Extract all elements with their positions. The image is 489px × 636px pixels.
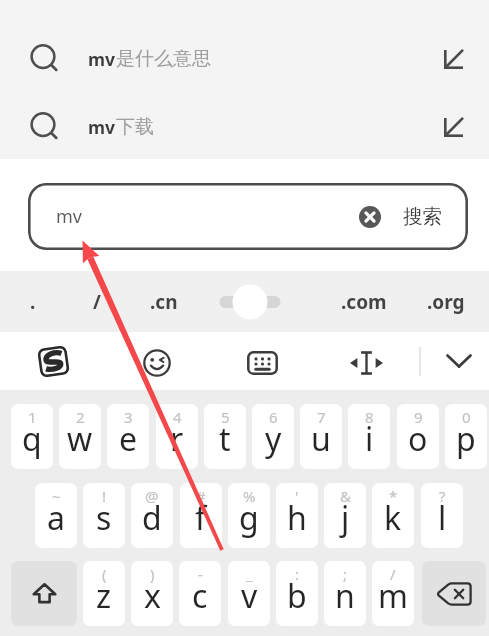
button[interactable]: & <box>324 483 366 548</box>
staticText: c <box>192 574 208 618</box>
staticText: ' <box>295 486 299 506</box>
staticText: mv <box>88 115 116 139</box>
staticText: 搜索 <box>403 204 442 229</box>
staticText: 1 <box>28 407 37 427</box>
button[interactable]: 8 <box>348 404 390 469</box>
staticText: & <box>340 486 351 506</box>
button[interactable]: Shift <box>11 561 77 626</box>
staticText: - <box>198 564 203 584</box>
button[interactable]: Hide keyboard <box>432 332 486 390</box>
staticText: s <box>96 496 112 540</box>
button[interactable]: 7 <box>300 404 342 469</box>
button[interactable]: 6 <box>252 404 294 469</box>
staticText: a <box>47 496 65 540</box>
button[interactable]: 0 <box>445 404 487 469</box>
staticText: w <box>67 417 93 461</box>
button[interactable]: Insert suggestion <box>437 93 471 159</box>
button[interactable]: 9 <box>397 404 439 469</box>
staticText: .cn <box>150 289 178 315</box>
staticText: mv <box>56 204 82 229</box>
staticText: .org <box>427 289 465 315</box>
staticText: k <box>384 496 402 540</box>
button[interactable]: ( <box>83 561 125 626</box>
button[interactable]: ? <box>421 483 463 548</box>
button[interactable]: . <box>0 271 66 332</box>
button[interactable]: Sogou input <box>26 332 80 390</box>
staticText: b <box>287 574 307 618</box>
staticText: l <box>438 496 447 540</box>
button[interactable]: ! <box>83 483 125 548</box>
button[interactable]: # <box>180 483 222 548</box>
staticText: 8 <box>365 407 374 427</box>
staticText: 7 <box>317 407 326 427</box>
button[interactable]: Clear text <box>352 183 388 250</box>
button[interactable]: ' <box>276 483 318 548</box>
staticText: ) <box>150 564 155 584</box>
button[interactable]: : <box>276 561 318 626</box>
staticText: # <box>196 486 206 506</box>
staticText: g <box>239 496 259 540</box>
button[interactable]: 5 <box>204 404 246 469</box>
staticText: * <box>389 486 398 506</box>
button[interactable]: 2 <box>59 404 101 469</box>
button[interactable]: Emoji <box>130 332 184 390</box>
staticText: .com <box>341 289 387 315</box>
staticText: p <box>456 417 476 461</box>
staticText: @ <box>145 486 159 506</box>
button[interactable]: / <box>372 561 414 626</box>
staticText: ~ <box>52 486 61 506</box>
button[interactable]: 3 <box>107 404 149 469</box>
staticText: r <box>170 417 184 461</box>
staticText: 2 <box>76 407 85 427</box>
staticText: 6 <box>269 407 278 427</box>
staticText: / <box>93 289 101 315</box>
staticText: ( <box>102 564 107 584</box>
staticText: 下载 <box>116 115 154 139</box>
staticText: q <box>22 417 42 461</box>
button[interactable]: mv <box>0 25 489 92</box>
staticText: j <box>341 496 350 540</box>
staticText: : <box>295 564 300 584</box>
staticText: u <box>311 417 331 461</box>
staticText: n <box>335 574 355 618</box>
staticText: o <box>408 417 428 461</box>
staticText: ! <box>102 486 107 506</box>
button[interactable]: * <box>372 483 414 548</box>
button[interactable]: 1 <box>11 404 53 469</box>
button[interactable]: mv <box>28 183 468 250</box>
button[interactable]: - <box>179 561 221 626</box>
button[interactable]: % <box>228 483 270 548</box>
button[interactable]: mv <box>0 93 489 159</box>
button[interactable]: Move cursor <box>339 332 393 390</box>
staticText: x <box>144 574 161 618</box>
button[interactable]: ~ <box>35 483 77 548</box>
staticText: 3 <box>124 407 133 427</box>
staticText: d <box>142 496 162 540</box>
button[interactable]: Backspace <box>422 561 486 626</box>
button[interactable]: _ <box>228 561 270 626</box>
button[interactable]: ; <box>324 561 366 626</box>
button[interactable]: Space <box>205 271 295 332</box>
button[interactable]: .com <box>331 271 397 332</box>
button[interactable]: / <box>64 271 130 332</box>
staticText: h <box>287 496 307 540</box>
button[interactable]: ) <box>131 561 173 626</box>
button[interactable]: Keyboard settings <box>235 332 289 390</box>
button[interactable]: Insert suggestion <box>437 25 471 92</box>
button[interactable]: 搜索 <box>394 183 451 250</box>
button[interactable]: .cn <box>131 271 197 332</box>
staticText: f <box>195 496 207 540</box>
staticText: 9 <box>414 407 423 427</box>
button[interactable]: @ <box>131 483 173 548</box>
staticText: 5 <box>221 407 230 427</box>
staticText: . <box>30 289 36 315</box>
button[interactable]: 4 <box>156 404 198 469</box>
button[interactable]: .org <box>413 271 479 332</box>
staticText: m <box>378 574 408 618</box>
staticText: 0 <box>462 407 471 427</box>
staticText: i <box>365 417 374 461</box>
staticText: 是什么意思 <box>116 47 211 71</box>
staticText: z <box>96 574 112 618</box>
